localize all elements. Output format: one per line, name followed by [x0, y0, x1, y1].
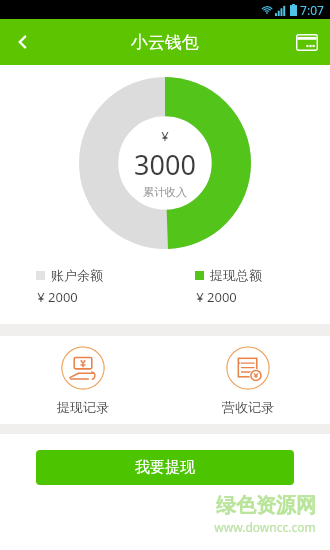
staticText: 7:07 — [300, 2, 324, 18]
staticText: 提现总额 — [210, 267, 262, 283]
staticText: 小云钱包 — [131, 32, 199, 53]
staticText: 提现记录 — [57, 399, 109, 415]
staticText: www.downcc.com — [214, 519, 316, 535]
button[interactable]: 我要提现 — [36, 450, 294, 485]
staticText: 账户余额 — [51, 267, 103, 283]
button[interactable]: 提现记录 — [0, 342, 165, 419]
button[interactable]: Back — [0, 19, 46, 65]
button[interactable]: Bank card — [284, 19, 330, 65]
staticText: ¥ — [161, 127, 169, 145]
button[interactable]: 营收记录 — [165, 342, 330, 419]
staticText: 营收记录 — [222, 399, 274, 415]
staticText: 绿色资源网 — [216, 493, 316, 518]
staticText: 我要提现 — [135, 458, 195, 477]
staticText: 累计收入 — [143, 185, 187, 199]
staticText: ¥ 2000 — [196, 288, 237, 306]
staticText: 3000 — [134, 146, 196, 183]
staticText: ¥ 2000 — [37, 288, 78, 306]
